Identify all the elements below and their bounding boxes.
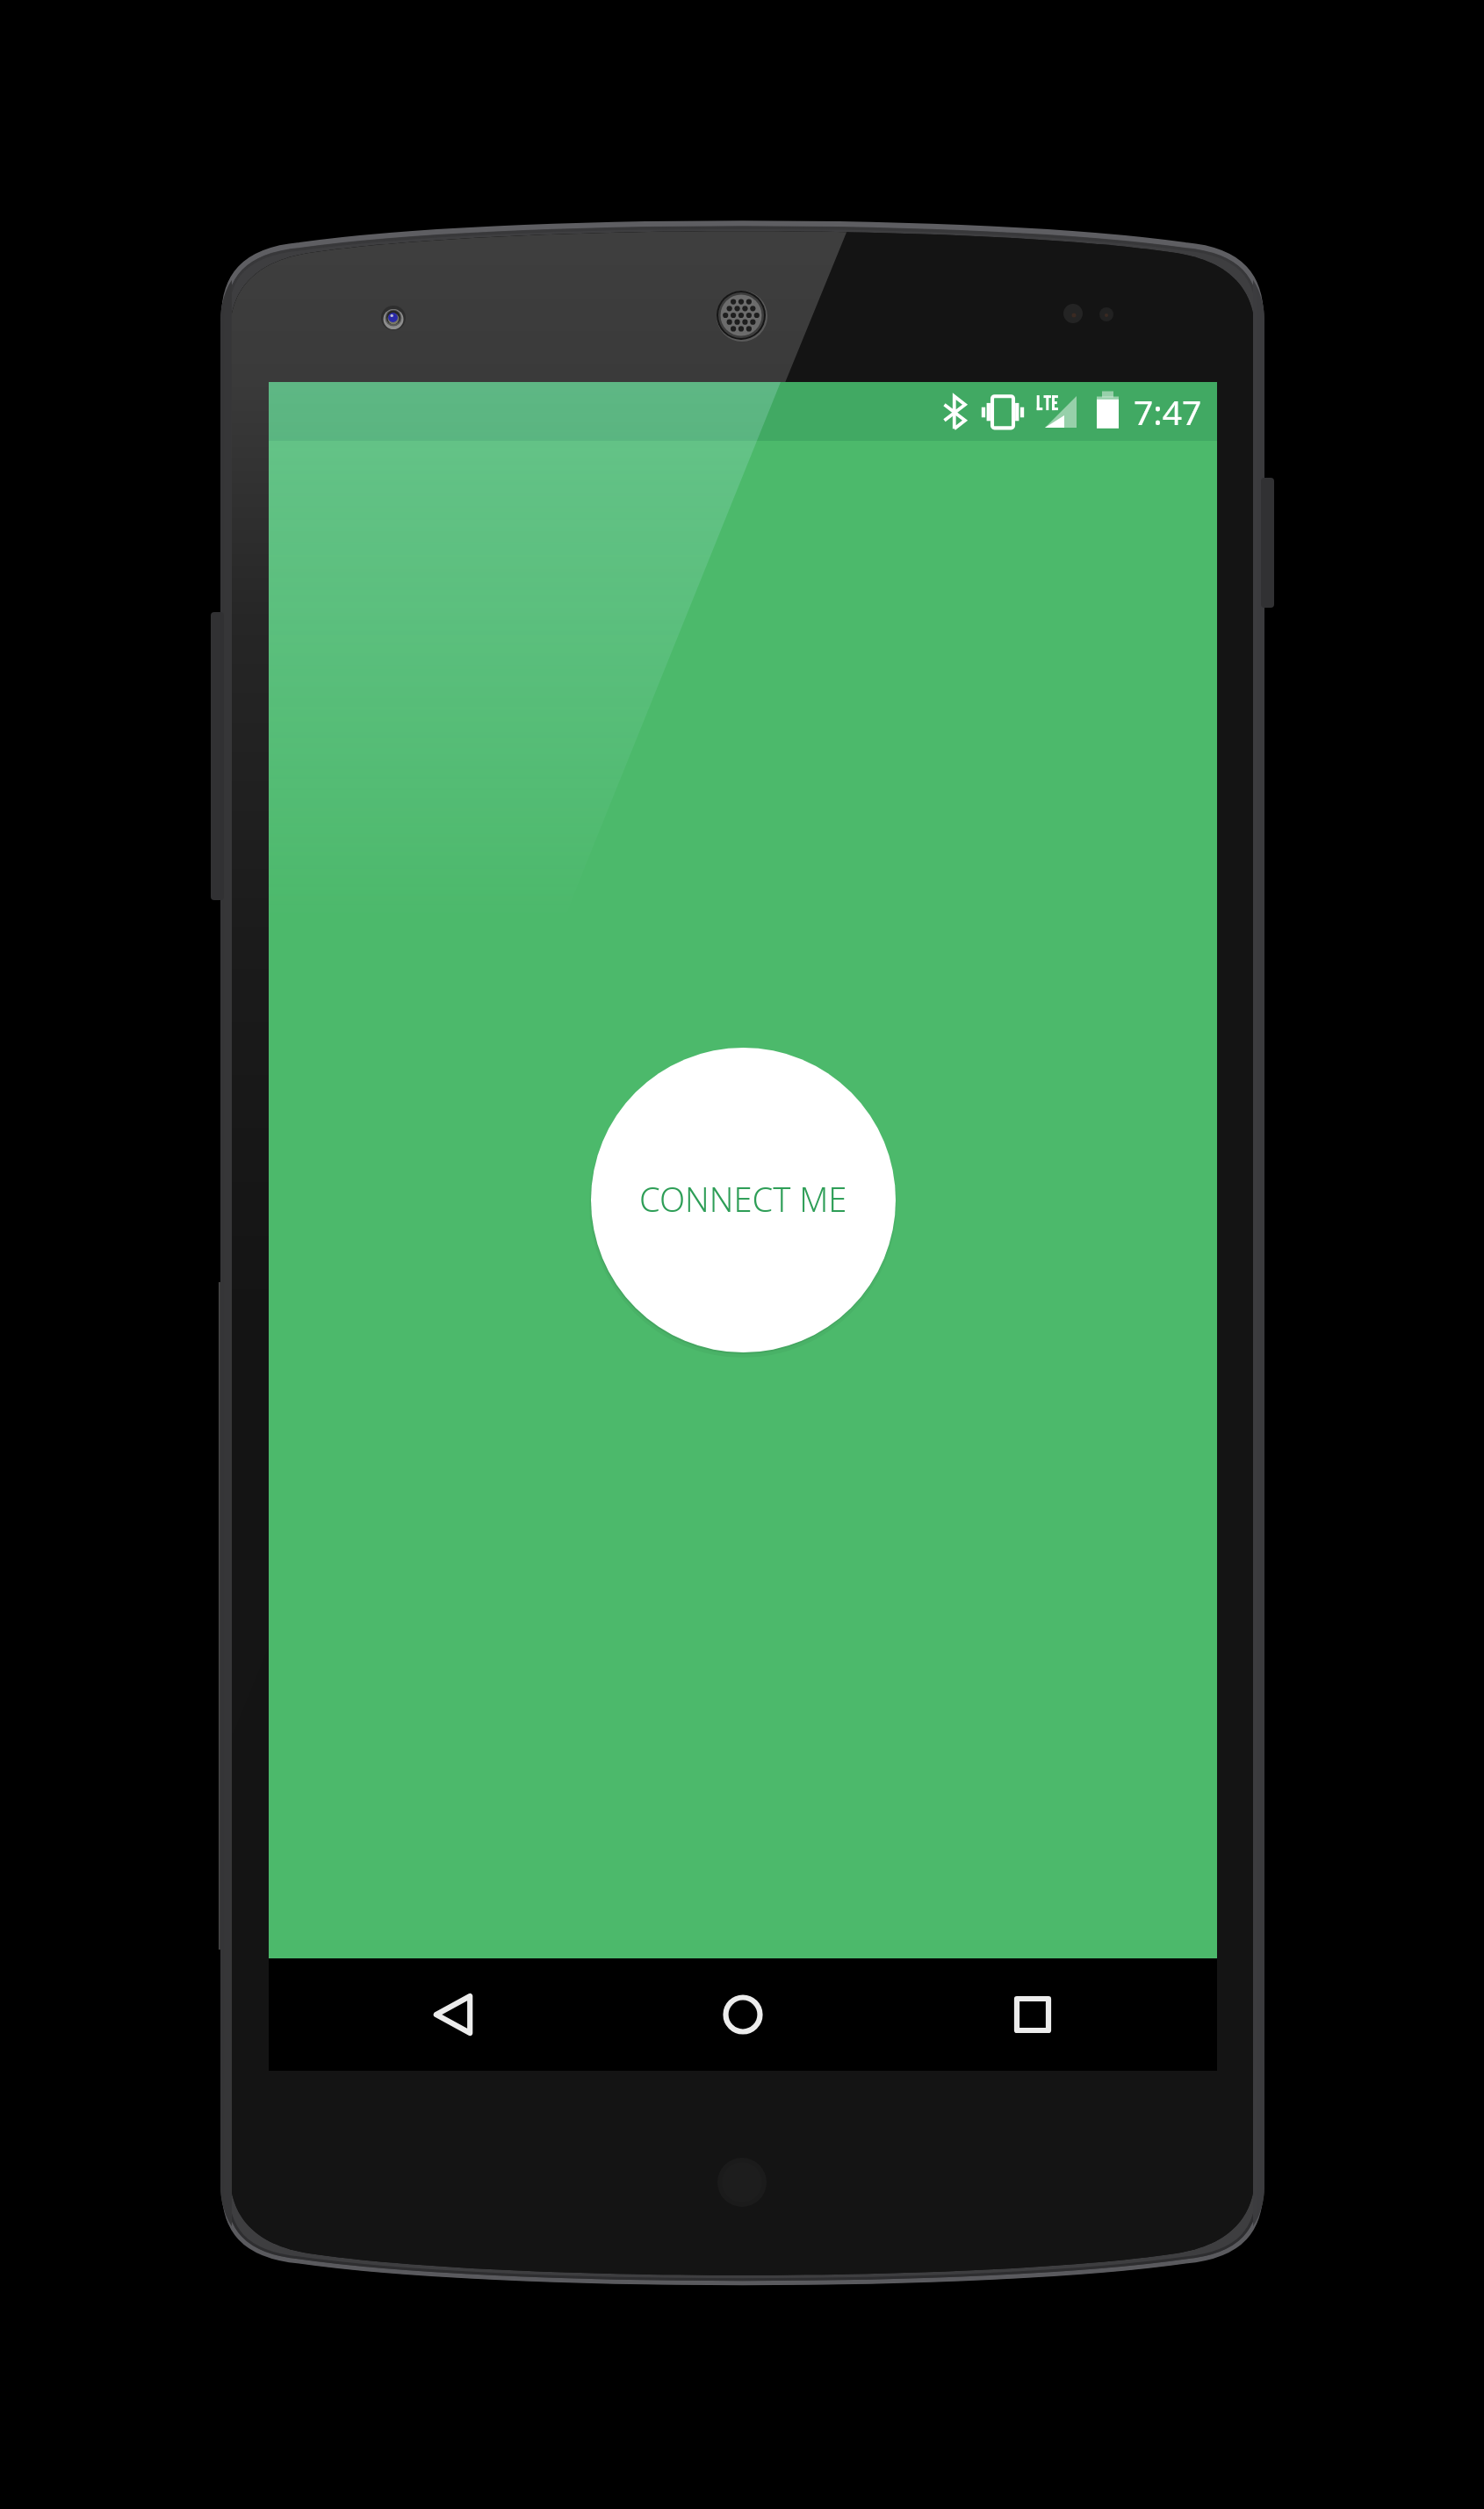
button[interactable]: Back: [397, 1958, 509, 2071]
button[interactable]: CONNECT ME: [591, 1048, 896, 1352]
button[interactable]: Recent apps: [976, 1958, 1089, 2071]
button[interactable]: Home: [687, 1958, 799, 2071]
staticText: CONNECT ME: [639, 1176, 847, 1222]
staticText: 7:47: [1134, 388, 1202, 435]
